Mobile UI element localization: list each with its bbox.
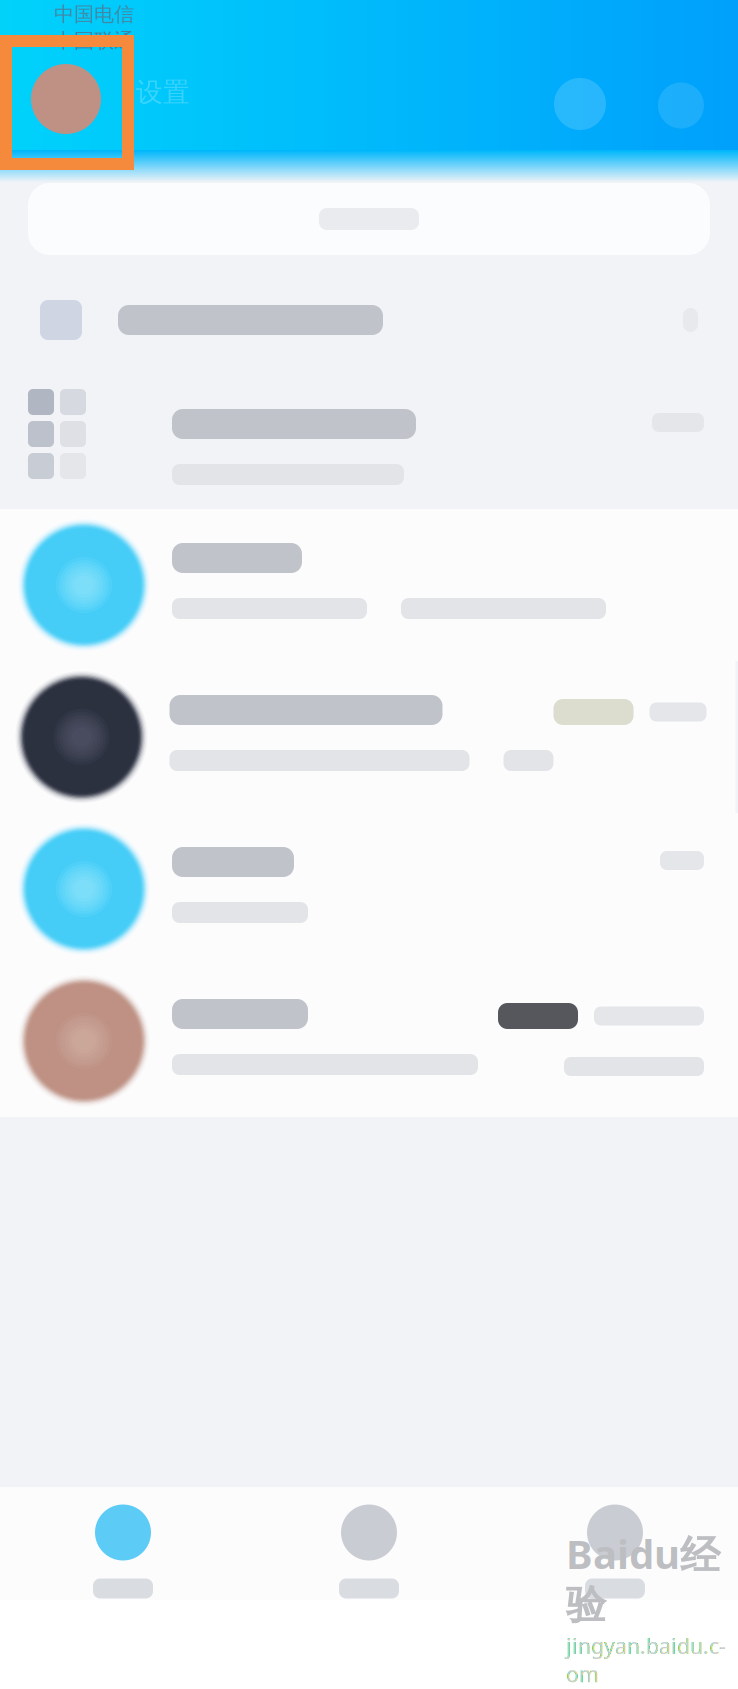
button[interactable]: Group chat	[0, 375, 738, 509]
button[interactable]: QQ Zone updates	[0, 509, 738, 661]
button[interactable]: Notice	[0, 265, 738, 375]
button[interactable]: Moments	[492, 1487, 738, 1600]
button[interactable]: Profile	[0, 0, 101, 134]
button[interactable]: Add friend	[554, 4, 606, 130]
button[interactable]: More options	[606, 5, 738, 128]
button[interactable]: Contacts	[246, 1487, 492, 1600]
button[interactable]: Friend message	[0, 661, 738, 813]
staticText: 中国电信	[54, 2, 134, 27]
staticText: Baidu经验	[566, 1527, 720, 1629]
button[interactable]: Messages	[0, 1487, 246, 1600]
button[interactable]: Search	[0, 183, 738, 255]
staticText: 设置	[136, 76, 190, 109]
staticText: 中国联通	[54, 29, 134, 53]
button[interactable]: Contact	[0, 965, 738, 1117]
button[interactable]: QQ Mail	[0, 813, 738, 965]
staticText: jingyan.baidu.com	[566, 1631, 726, 1688]
